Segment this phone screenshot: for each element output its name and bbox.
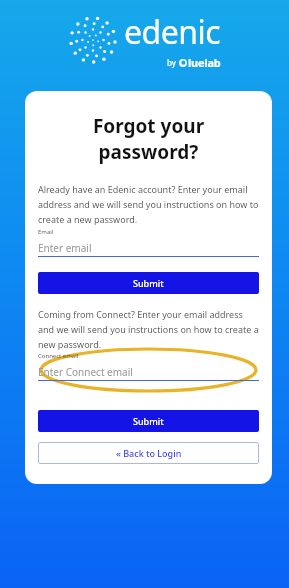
button[interactable]: Enter email — [38, 239, 259, 256]
staticText: Forgot your password? — [38, 113, 259, 164]
staticText: Enter email — [38, 241, 92, 255]
button[interactable]: Enter Connect email — [38, 363, 259, 380]
staticText: by — [167, 57, 176, 68]
staticText: Enter Connect email — [38, 365, 133, 379]
button[interactable]: « Back to Login — [38, 442, 259, 464]
staticText: Email — [38, 228, 54, 236]
staticText: Submit — [133, 277, 164, 289]
staticText: luelab — [188, 55, 221, 70]
staticText: Already have an Edenic account? Enter yo… — [38, 183, 259, 225]
staticText: Connect email — [38, 352, 79, 360]
staticText: Submit — [133, 415, 164, 427]
button[interactable]: Submit — [38, 410, 259, 432]
staticText: « Back to Login — [116, 447, 182, 459]
staticText: edenic — [124, 10, 221, 54]
button[interactable]: Submit — [38, 272, 259, 294]
staticText: Coming from Connect? Enter your email ad… — [38, 308, 259, 350]
